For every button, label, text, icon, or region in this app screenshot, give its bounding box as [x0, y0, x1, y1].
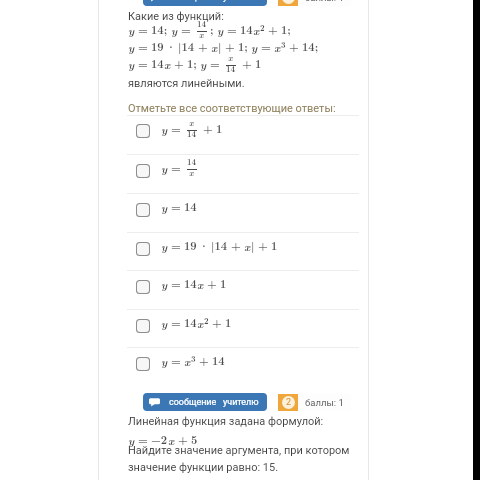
- staticText: =: [171, 160, 181, 176]
- staticText: +: [258, 238, 268, 254]
- button[interactable]: y: [127, 348, 359, 386]
- staticText: 14: [187, 128, 197, 139]
- staticText: баллы: 1: [305, 0, 344, 3]
- staticText: значение функции равно: 15.: [128, 461, 279, 474]
- staticText: x: [197, 276, 204, 292]
- staticText: +: [203, 121, 213, 137]
- staticText: =: [171, 276, 181, 292]
- staticText: |14: [211, 238, 228, 254]
- staticText: +: [231, 238, 241, 254]
- staticText: +: [268, 22, 278, 38]
- staticText: Отметьте все соответствующие ответы:: [128, 102, 336, 115]
- button[interactable]: y: [127, 310, 359, 347]
- staticText: x: [184, 353, 191, 369]
- staticText: =: [171, 238, 181, 254]
- staticText: =: [138, 39, 148, 55]
- staticText: y: [128, 432, 135, 448]
- staticText: x: [244, 238, 251, 254]
- staticText: 1: [255, 56, 262, 72]
- staticText: Линейная функция задана формулой:: [128, 415, 324, 428]
- staticText: 3: [281, 39, 286, 50]
- staticText: y: [171, 22, 178, 38]
- staticText: =: [138, 432, 148, 448]
- staticText: x: [199, 29, 204, 41]
- staticText: x: [211, 39, 218, 55]
- staticText: =: [171, 199, 181, 215]
- staticText: |: [251, 238, 255, 254]
- staticText: 19: [151, 39, 164, 55]
- staticText: y: [161, 160, 168, 176]
- staticText: являются линейными.: [128, 77, 245, 90]
- staticText: 14: [187, 156, 197, 167]
- button[interactable]: сообщение учителю: [143, 0, 267, 6]
- staticText: y: [217, 22, 224, 38]
- staticText: +: [225, 39, 235, 55]
- staticText: 14: [197, 18, 207, 29]
- staticText: y: [161, 276, 168, 292]
- staticText: 2: [286, 397, 292, 408]
- staticText: 2: [204, 315, 209, 326]
- staticText: Какие из функций:: [128, 10, 224, 23]
- staticText: x: [253, 22, 260, 38]
- staticText: сообщение учителю: [169, 397, 259, 408]
- button[interactable]: y: [127, 194, 359, 232]
- staticText: =: [261, 39, 271, 55]
- staticText: =: [171, 353, 181, 369]
- staticText: +: [178, 432, 188, 448]
- staticText: =: [171, 121, 181, 137]
- staticText: |14: [178, 39, 195, 55]
- staticText: 3: [191, 353, 196, 364]
- staticText: 14: [240, 22, 253, 38]
- staticText: y: [200, 56, 207, 72]
- staticText: 14;: [302, 39, 319, 55]
- button[interactable]: 2: [278, 394, 351, 411]
- staticText: 14: [226, 63, 236, 74]
- button[interactable]: y: [127, 116, 359, 154]
- staticText: y: [161, 315, 168, 331]
- staticText: 19: [184, 238, 197, 254]
- staticText: 14;: [151, 22, 168, 38]
- staticText: 5: [191, 432, 198, 448]
- staticText: |: [218, 39, 222, 55]
- staticText: =: [171, 315, 181, 331]
- staticText: ·: [199, 238, 209, 254]
- staticText: 14: [184, 276, 197, 292]
- staticText: x: [168, 432, 175, 448]
- staticText: y: [161, 238, 168, 254]
- staticText: +: [289, 39, 299, 55]
- staticText: =: [138, 56, 148, 72]
- staticText: =: [181, 22, 191, 38]
- button[interactable]: сообщение учителю: [143, 393, 267, 411]
- staticText: =: [227, 22, 237, 38]
- staticText: 1: [271, 238, 278, 254]
- staticText: =: [210, 56, 220, 72]
- staticText: 1;: [187, 56, 197, 72]
- staticText: 14: [151, 56, 164, 72]
- staticText: ·: [166, 39, 176, 55]
- staticText: x: [197, 315, 204, 331]
- button[interactable]: y: [127, 155, 359, 193]
- button[interactable]: y: [127, 233, 359, 270]
- staticText: x: [164, 56, 171, 72]
- staticText: y: [128, 56, 135, 72]
- staticText: 1: [225, 315, 232, 331]
- staticText: баллы: 1: [305, 397, 344, 408]
- staticText: y: [251, 39, 258, 55]
- staticText: y: [161, 199, 168, 215]
- button[interactable]: y: [127, 271, 359, 309]
- button[interactable]: 2: [278, 0, 351, 6]
- staticText: +: [207, 276, 217, 292]
- staticText: ;: [210, 22, 214, 38]
- staticText: 1: [220, 276, 227, 292]
- staticText: 2: [260, 22, 265, 33]
- staticText: y: [161, 121, 168, 137]
- staticText: y: [161, 353, 168, 369]
- staticText: =: [138, 22, 148, 38]
- staticText: +: [198, 39, 208, 55]
- staticText: +: [199, 353, 209, 369]
- staticText: y: [128, 22, 135, 38]
- staticText: x: [189, 117, 194, 129]
- staticText: x: [189, 167, 194, 179]
- staticText: x: [274, 39, 281, 55]
